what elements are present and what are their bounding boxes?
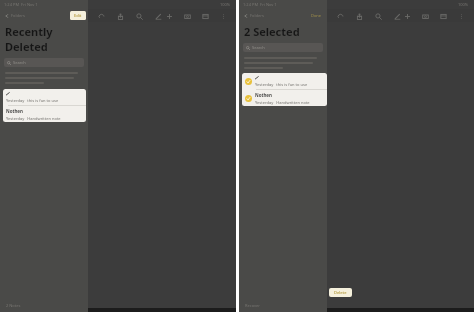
staticText: 1:24 PM Fri Nov 1	[243, 2, 277, 7]
staticText: Recover	[245, 303, 260, 308]
button[interactable]: Nothen	[3, 106, 86, 122]
staticText: 1:24 PM Fri Nov 1	[4, 2, 38, 7]
staticText: 2 Selected	[244, 24, 300, 39]
button[interactable]: Share	[354, 11, 364, 21]
staticText: Delete	[334, 290, 347, 295]
button[interactable]: Done	[308, 11, 325, 20]
button[interactable]: Search	[4, 58, 84, 67]
button[interactable]: 2 Notes	[5, 302, 22, 309]
button[interactable]: Camera	[182, 11, 192, 21]
button[interactable]: Yesterday this is fun to use	[3, 89, 86, 105]
staticText: Search	[252, 45, 265, 50]
button[interactable]: Folders	[243, 12, 265, 19]
button[interactable]: Edit	[70, 11, 86, 20]
staticText: Done	[311, 13, 322, 18]
button[interactable]: Compose	[200, 11, 210, 21]
button[interactable]: Folders	[4, 12, 26, 19]
button[interactable]: Nothen	[242, 90, 327, 106]
staticText: 2 Notes	[6, 303, 21, 308]
button[interactable]: Compose	[438, 11, 448, 21]
button[interactable]: Zoom	[134, 11, 144, 21]
staticText: Edit	[74, 13, 82, 18]
button[interactable]: Markup	[392, 11, 402, 21]
staticText: Yesterday this is fun to use	[6, 98, 59, 103]
button[interactable]: Undo	[335, 11, 345, 21]
button[interactable]: Recover	[244, 302, 261, 309]
button[interactable]: Zoom	[373, 11, 383, 21]
button[interactable]: Camera	[420, 11, 430, 21]
staticText: 100%	[458, 2, 469, 7]
button[interactable]: Add	[402, 11, 412, 21]
staticText: Yesterday this is fun to use	[255, 82, 308, 87]
button[interactable]: Undo	[96, 11, 106, 21]
staticText: Yesterday Handwritten note	[6, 116, 61, 121]
button[interactable]: Markup	[153, 11, 163, 21]
button[interactable]: More	[456, 11, 466, 21]
button[interactable]: Add	[164, 11, 174, 21]
staticText: Nothen	[255, 92, 272, 98]
button[interactable]: Yesterday this is fun to use	[242, 73, 327, 89]
button[interactable]: Search	[243, 43, 323, 52]
staticText: Yesterday Handwritten note	[255, 100, 310, 105]
staticText: Search	[13, 60, 26, 65]
button[interactable]: Share	[115, 11, 125, 21]
button[interactable]: More	[218, 11, 228, 21]
button[interactable]: Delete	[329, 288, 352, 297]
staticText: Nothen	[6, 108, 23, 114]
staticText: Folders	[250, 13, 264, 18]
staticText: Recently Deleted	[5, 24, 88, 54]
staticText: Folders	[11, 13, 25, 18]
staticText: 100%	[220, 2, 231, 7]
